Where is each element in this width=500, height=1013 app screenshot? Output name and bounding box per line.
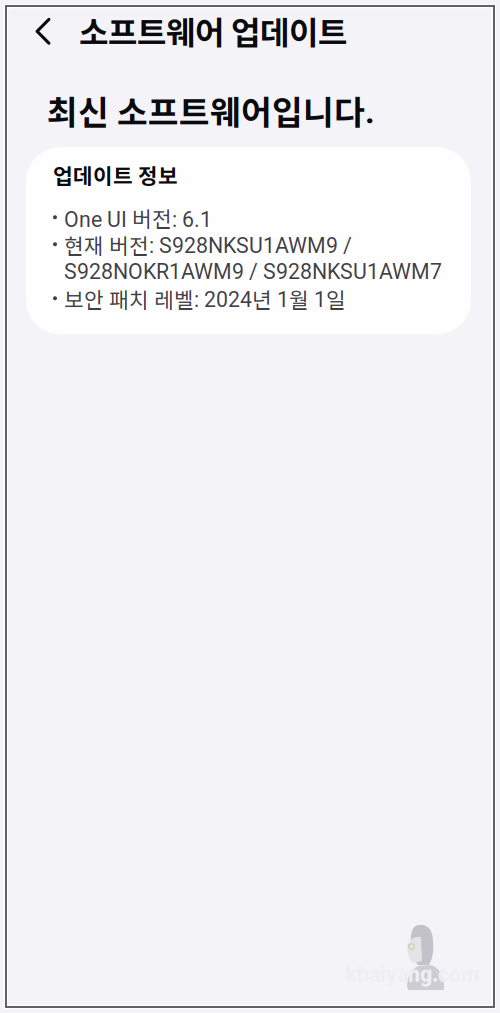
staticText: 소프트웨어 업데이트 bbox=[79, 7, 347, 54]
staticText: khaiyang.com bbox=[345, 962, 479, 987]
staticText: One UI 버전: 6.1 bbox=[64, 202, 212, 233]
staticText: 보안 패치 레벨: 2024년 1월 1일 bbox=[64, 283, 346, 314]
staticText: 현재 버전: S928NKSU1AWM9 / bbox=[64, 229, 352, 260]
staticText: 최신 소프트웨어입니다. bbox=[47, 86, 375, 134]
button[interactable]: Back bbox=[27, 7, 59, 53]
staticText: S928NOKR1AWM9 / S928NKSU1AWM7 bbox=[64, 259, 442, 284]
staticText: 업데이트 정보 bbox=[53, 159, 178, 190]
